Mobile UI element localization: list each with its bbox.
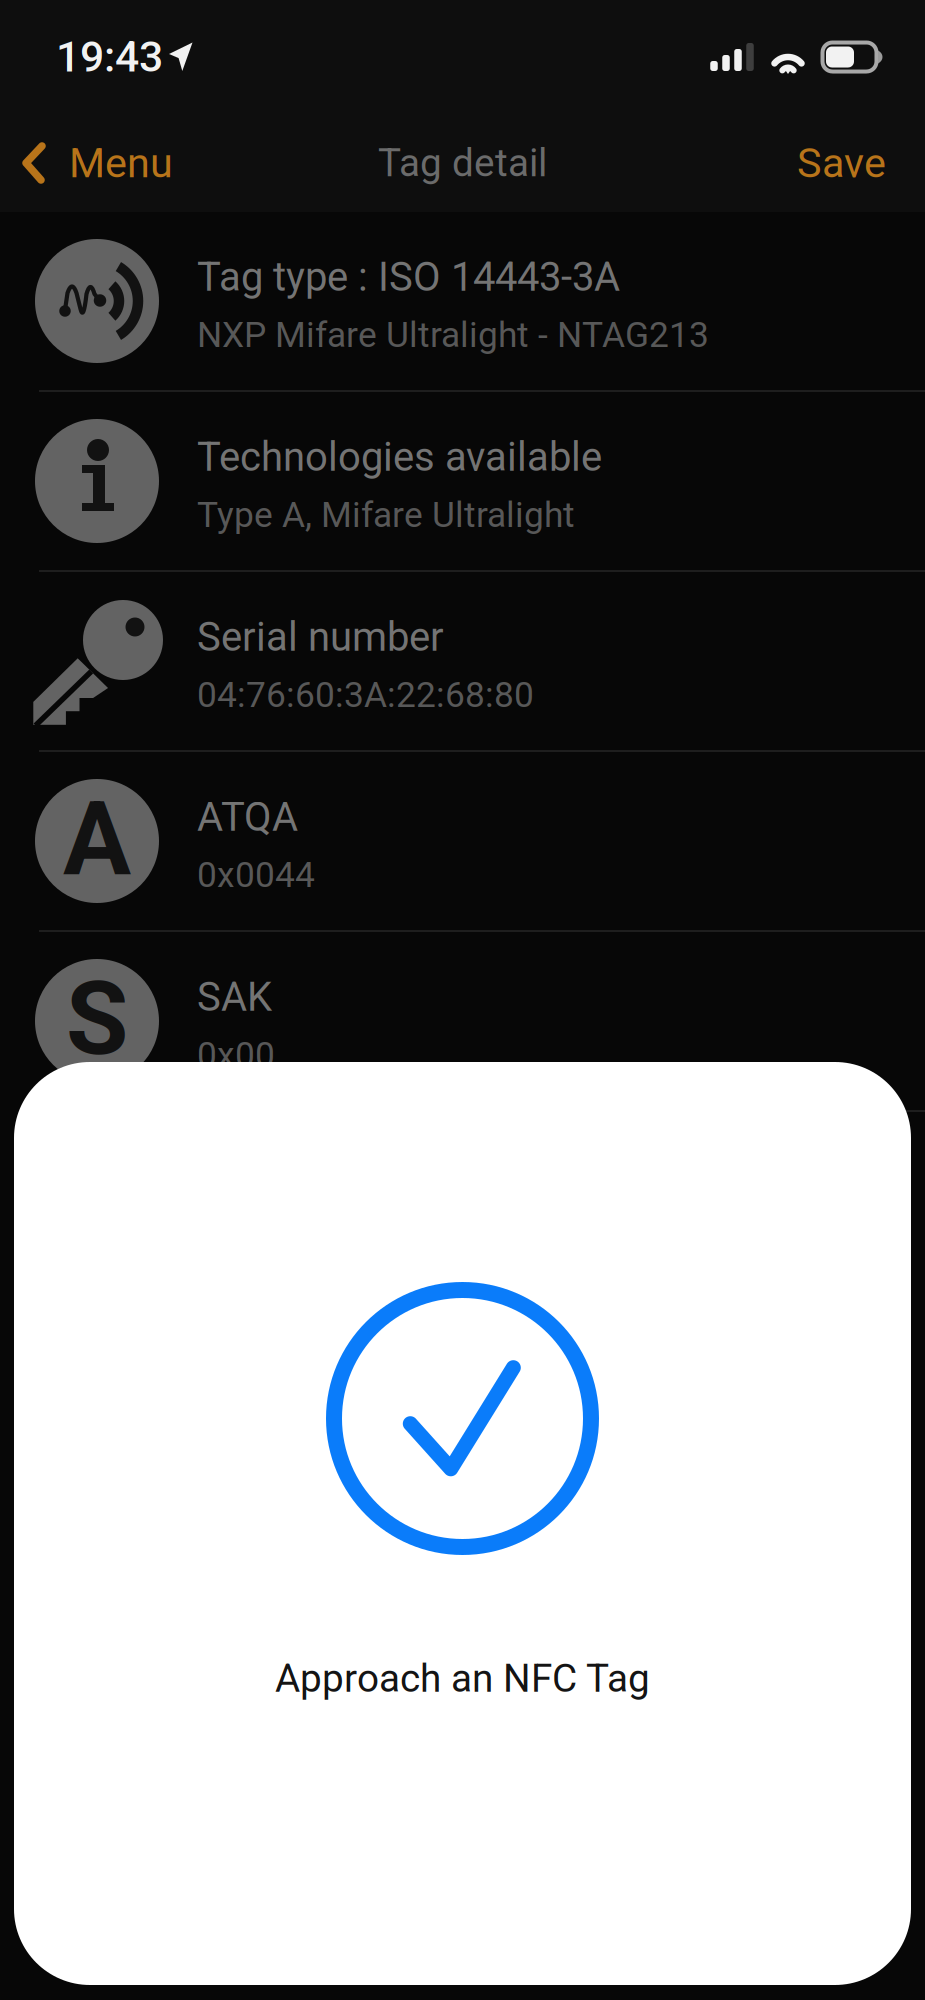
staticText: 0x0044 <box>197 854 315 896</box>
staticText: Type A, Mifare Ultralight <box>197 494 575 536</box>
staticText: 0x00 <box>197 1034 275 1076</box>
button[interactable]: Menu <box>0 114 195 212</box>
button[interactable]: Serial number <box>0 572 925 750</box>
button[interactable]: Tag type : ISO 14443-3A <box>0 212 925 390</box>
staticText: NXP Mifare Ultralight - NTAG213 <box>197 314 709 356</box>
staticText: SAK <box>197 974 272 1020</box>
staticText: Menu <box>69 139 173 187</box>
button[interactable]: Technologies available <box>0 392 925 570</box>
button[interactable]: S <box>0 932 925 1110</box>
staticText: S <box>66 960 128 1078</box>
staticText: Serial number <box>197 614 444 660</box>
button[interactable]: Save <box>767 114 925 212</box>
staticText: Approach an NFC Tag <box>275 1656 650 1701</box>
staticText: Save <box>797 139 886 187</box>
button[interactable]: A <box>0 752 925 930</box>
staticText: Tag type : ISO 14443-3A <box>197 254 620 300</box>
staticText: 04:76:60:3A:22:68:80 <box>197 674 534 716</box>
staticText: A <box>63 780 131 898</box>
staticText: 19:43 <box>56 32 163 82</box>
staticText: Technologies available <box>197 434 602 480</box>
staticText: ATQA <box>197 794 298 840</box>
staticText: Tag detail <box>378 140 547 186</box>
